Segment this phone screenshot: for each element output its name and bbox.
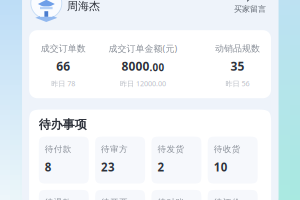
button[interactable]: 买家留言 xyxy=(234,0,266,14)
staticText: 成交订单金额(元) xyxy=(108,42,177,55)
staticText: 待退款 xyxy=(45,197,72,200)
staticText: 8 xyxy=(45,159,52,175)
staticText: 昨日 56 xyxy=(225,79,249,88)
button[interactable]: 待付款 xyxy=(39,137,89,184)
button[interactable]: 待评价 xyxy=(208,190,258,200)
staticText: 35 xyxy=(230,58,244,74)
staticText: 66 xyxy=(56,58,70,74)
button[interactable]: 周海杰 xyxy=(67,0,100,13)
staticText: 23 xyxy=(101,159,115,175)
staticText: 待开票 xyxy=(101,197,128,200)
button[interactable]: 成交订单数 xyxy=(41,43,86,87)
button[interactable]: 待对账 xyxy=(151,190,201,200)
staticText: 成交订单数 xyxy=(41,43,86,54)
button[interactable]: 待开票 xyxy=(95,190,145,200)
staticText: 待对账 xyxy=(157,197,184,200)
button[interactable]: 待审方 xyxy=(95,137,145,184)
staticText: 待审方 xyxy=(101,144,128,154)
button[interactable]: 待收货 xyxy=(208,137,258,184)
staticText: 10 xyxy=(214,159,228,175)
button[interactable]: 成交订单金额(元) xyxy=(108,43,177,87)
staticText: 昨日 12000.00 xyxy=(120,79,166,88)
staticText: .00 xyxy=(149,61,164,74)
staticText: 待发货 xyxy=(157,144,184,154)
staticText: 8000 xyxy=(121,58,149,74)
button[interactable]: 待退款 xyxy=(39,190,89,200)
staticText: 待收货 xyxy=(214,144,241,154)
button[interactable]: 待发货 xyxy=(151,137,201,184)
staticText: 待付款 xyxy=(45,144,72,154)
staticText: 周海杰 xyxy=(67,0,100,13)
staticText: 动销品规数 xyxy=(215,43,260,54)
staticText: 昨日 78 xyxy=(51,79,75,88)
staticText: 买家留言 xyxy=(234,4,266,14)
button[interactable]: 动销品规数 xyxy=(215,43,260,87)
staticText: 待办事项 xyxy=(39,117,87,132)
staticText: 2 xyxy=(157,159,164,175)
staticText: 待评价 xyxy=(214,197,241,200)
